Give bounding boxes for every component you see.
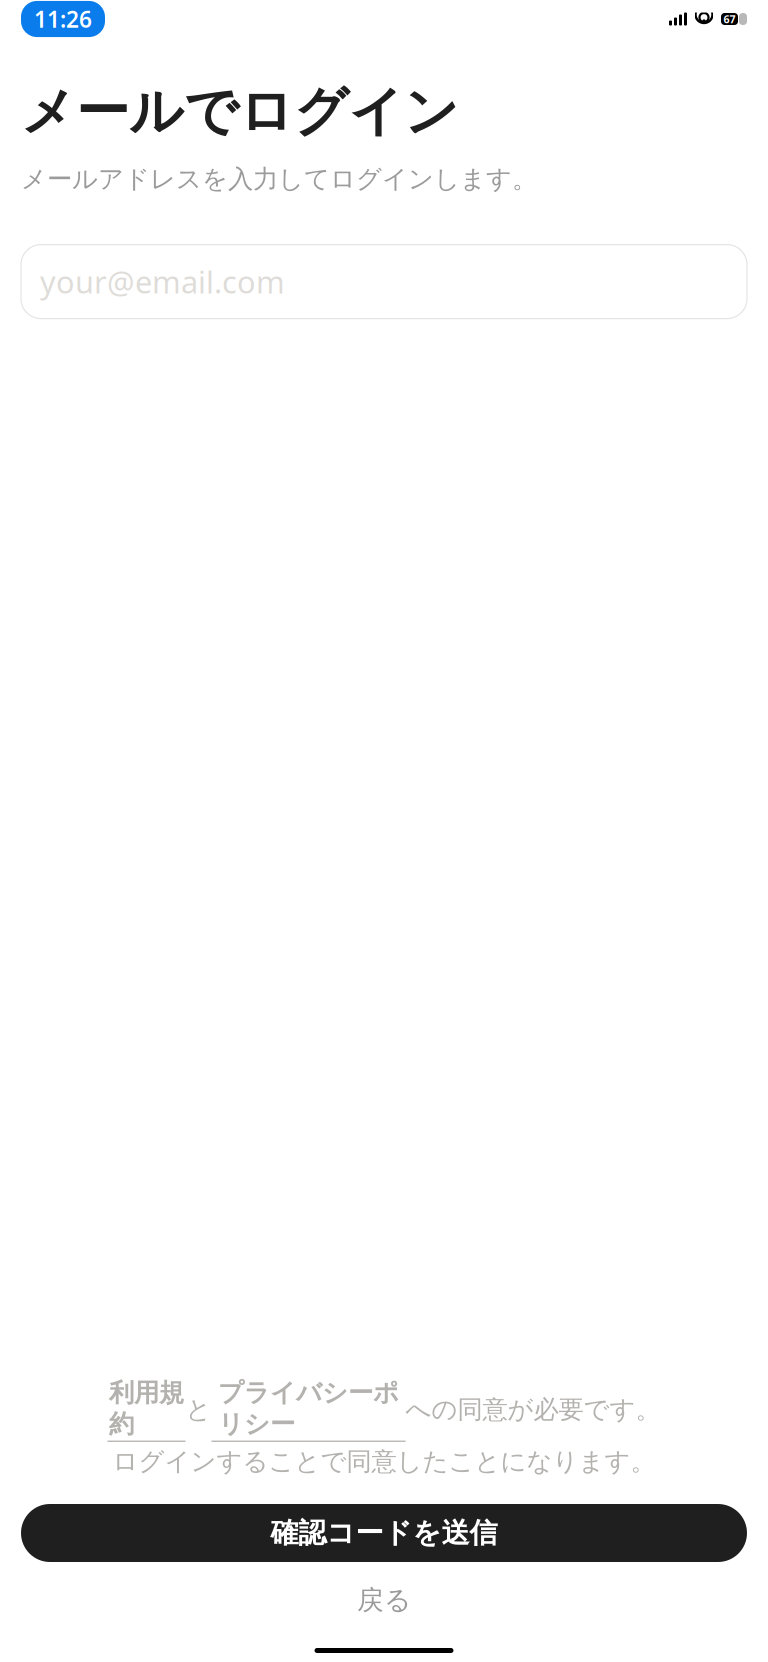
staticText: 確認コードを送信: [270, 1516, 497, 1550]
button[interactable]: 戻る: [21, 1580, 747, 1620]
staticText: 67: [723, 12, 735, 26]
staticText: メールでログイン: [21, 79, 459, 144]
staticText: プライバシーポリシー: [218, 1377, 399, 1440]
staticText: と: [185, 1394, 211, 1425]
staticText: 利用規約: [109, 1377, 184, 1440]
button[interactable]: 確認コードを送信: [21, 1504, 747, 1562]
staticText: 11:26: [34, 4, 92, 34]
button[interactable]: 利用規約: [107, 1377, 185, 1442]
staticText: メールアドレスを入力してログインします。: [21, 163, 537, 195]
button[interactable]: プライバシーポリシー: [211, 1377, 405, 1442]
staticText: 戻る: [357, 1584, 411, 1616]
staticText: への同意が必要です。: [405, 1394, 660, 1425]
staticText: ログインすることで同意したことになります。: [112, 1446, 655, 1477]
button[interactable]: your@email.com: [21, 245, 747, 319]
staticText: your@email.com: [40, 261, 285, 302]
